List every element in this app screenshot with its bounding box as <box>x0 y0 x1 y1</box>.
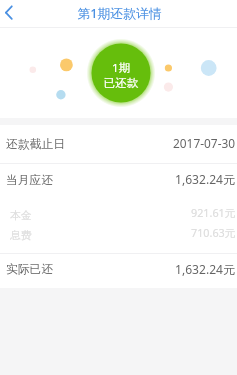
staticText: 1,632.24元 <box>175 171 236 188</box>
button[interactable] <box>0 254 237 289</box>
staticText: 2017-07-30 <box>173 135 236 151</box>
staticText: 第1期还款详情 <box>1 4 237 21</box>
button[interactable]: Back <box>0 0 26 27</box>
staticText: 当月应还 <box>6 173 54 188</box>
staticText: 710.63元 <box>191 225 236 240</box>
staticText: 实际已还 <box>6 262 54 277</box>
staticText: 还款截止日 <box>6 137 65 152</box>
button[interactable] <box>0 125 237 163</box>
staticText: 息费 <box>10 229 32 243</box>
staticText: 本金 <box>10 209 32 223</box>
staticText: 921.61元 <box>191 205 236 220</box>
staticText: 1期 已还款 <box>91 60 151 90</box>
button[interactable] <box>0 164 237 253</box>
staticText: 1,632.24元 <box>175 261 236 278</box>
